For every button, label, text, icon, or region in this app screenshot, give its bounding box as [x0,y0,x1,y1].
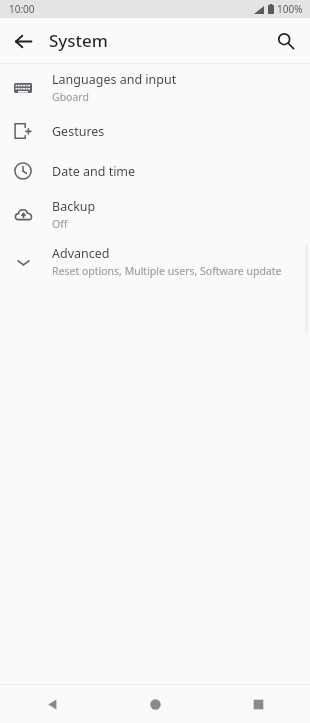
staticText: Reset options, Multiple users, Software … [52,264,282,278]
staticText: Gestures [52,123,105,140]
button[interactable]: Recent apps [207,685,310,723]
button[interactable]: Home [104,685,207,723]
button[interactable]: Back [0,685,104,723]
staticText: Advanced [52,245,110,262]
staticText: Off [52,217,68,231]
staticText: 10:00 [9,2,35,16]
button[interactable]: Advanced [0,238,310,285]
staticText: 100% [277,2,303,16]
button[interactable]: Date and time [0,151,310,191]
staticText: Backup [52,198,96,215]
button[interactable]: Gestures [0,111,310,151]
button[interactable]: Back [6,24,40,58]
button[interactable]: Backup [0,191,310,238]
staticText: Date and time [52,163,136,180]
button[interactable]: Search [269,24,303,58]
staticText: System [49,29,108,52]
staticText: Gboard [52,90,89,104]
button[interactable]: Languages and input [0,64,310,111]
staticText: Languages and input [52,71,177,88]
